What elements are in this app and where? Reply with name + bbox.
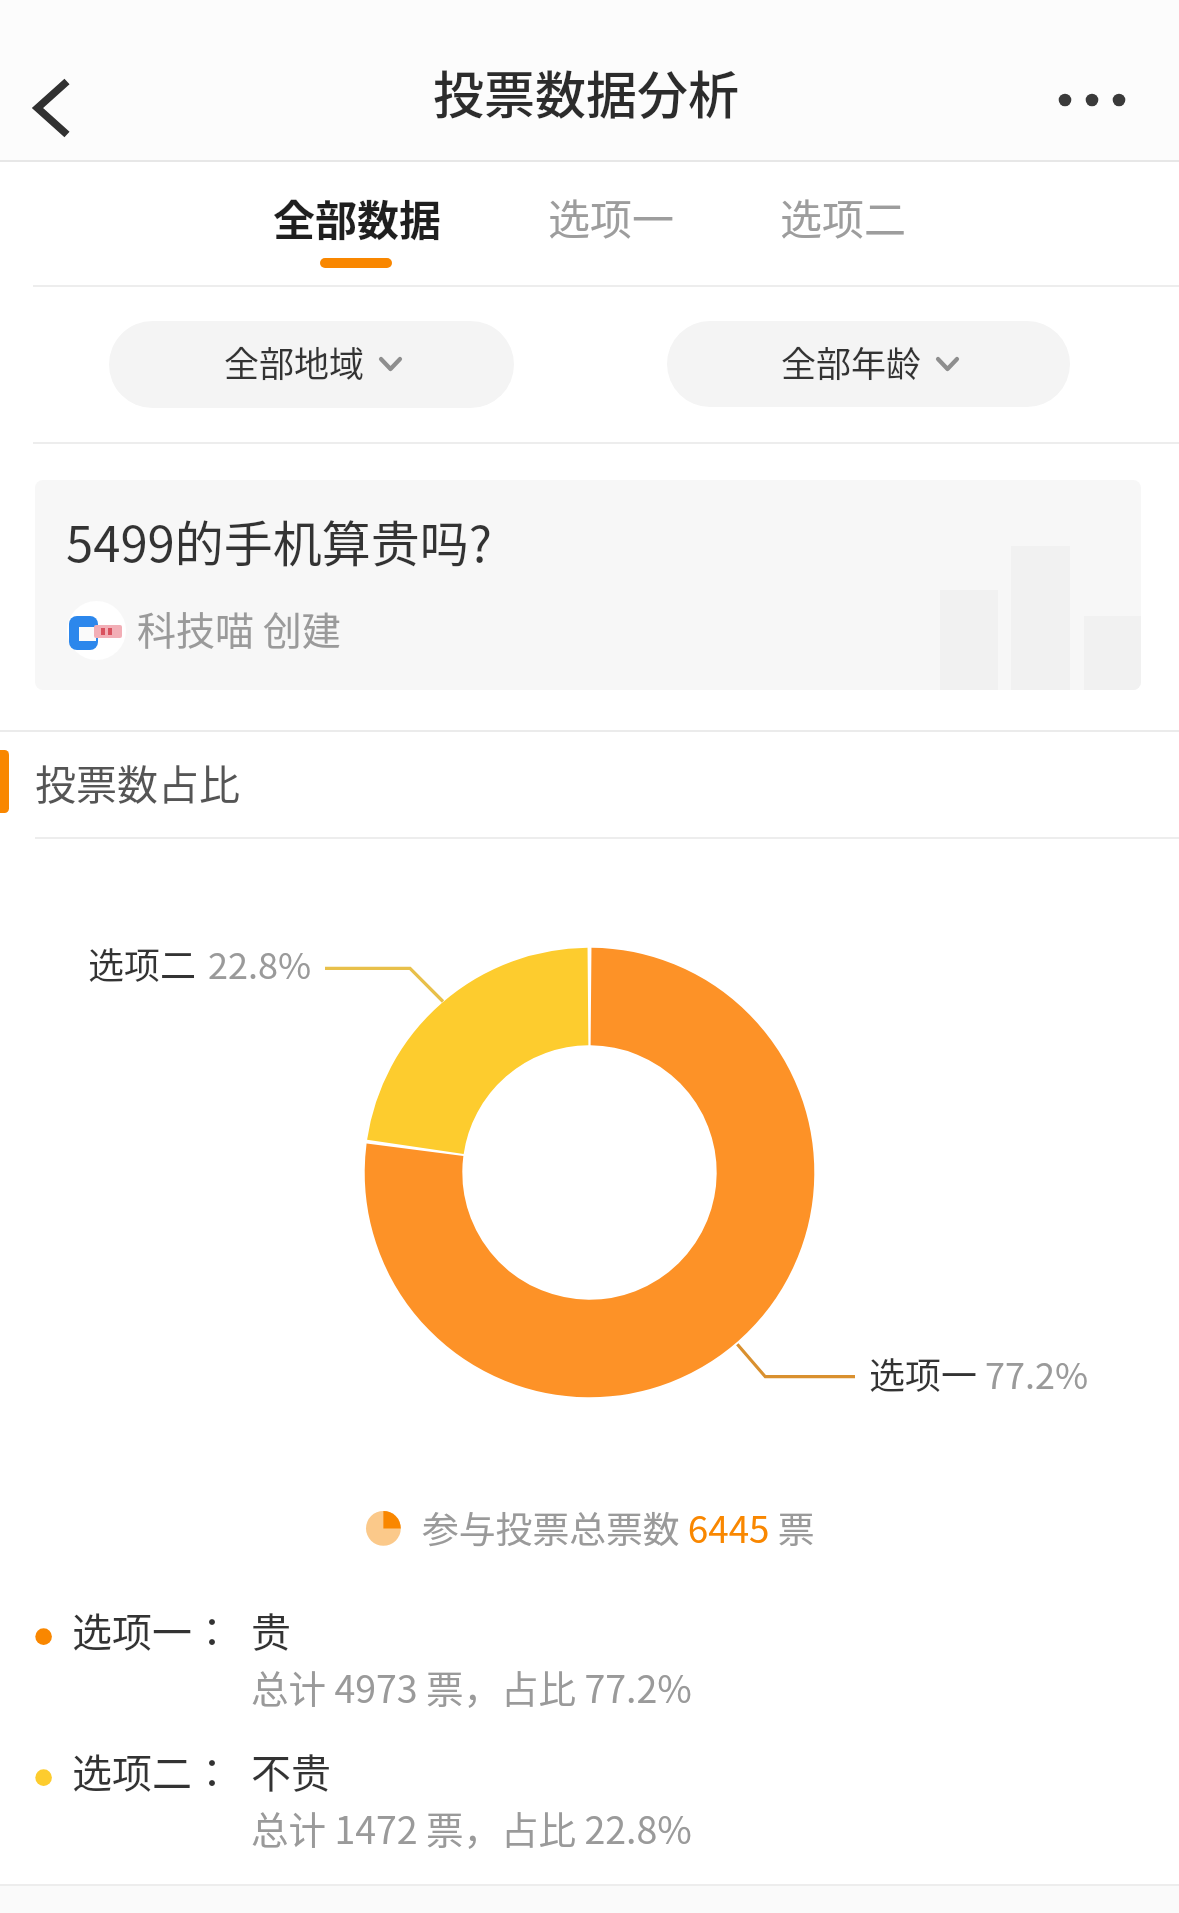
staticText: 选项一：: [72, 1601, 232, 1659]
staticText: 投票数占比: [35, 752, 240, 811]
staticText: 22.8%: [208, 937, 312, 989]
button[interactable]: 选项二：: [0, 1741, 1179, 1882]
staticText: 全部地域: [224, 336, 365, 387]
button[interactable]: 全部数据: [250, 161, 466, 285]
staticText: 选项二: [88, 937, 197, 989]
button[interactable]: 全部年龄: [667, 321, 1070, 407]
staticText: 选项二: [780, 186, 907, 247]
staticText: 5499的手机算贵吗?: [66, 505, 493, 576]
staticText: 总计 1472 票，占比 22.8%: [251, 1800, 692, 1854]
staticText: 全部年龄: [781, 336, 922, 387]
staticText: 不贵: [251, 1742, 331, 1800]
button[interactable]: More options: [1035, 0, 1179, 160]
button[interactable]: 全部地域: [109, 321, 514, 408]
staticText: 科技喵 创建: [137, 600, 341, 656]
button[interactable]: 选项一：: [0, 1600, 1179, 1741]
button[interactable]: 选项一: [502, 161, 712, 285]
staticText: 选项二：: [72, 1742, 232, 1800]
staticText: 选项一: [548, 186, 675, 247]
button[interactable]: Back: [0, 0, 105, 160]
staticText: 选项一: [869, 1347, 978, 1399]
staticText: 总计 4973 票，占比 77.2%: [251, 1659, 692, 1713]
button[interactable]: 选项二: [735, 161, 945, 285]
staticText: 77.2%: [985, 1347, 1089, 1399]
staticText: 投票数据分析: [433, 55, 740, 129]
staticText: 全部数据: [273, 187, 442, 248]
staticText: 贵: [251, 1601, 291, 1659]
button[interactable]: 5499的手机算贵吗?: [35, 480, 1141, 690]
staticText: 参与投票总票数 6445 票: [422, 1500, 815, 1553]
